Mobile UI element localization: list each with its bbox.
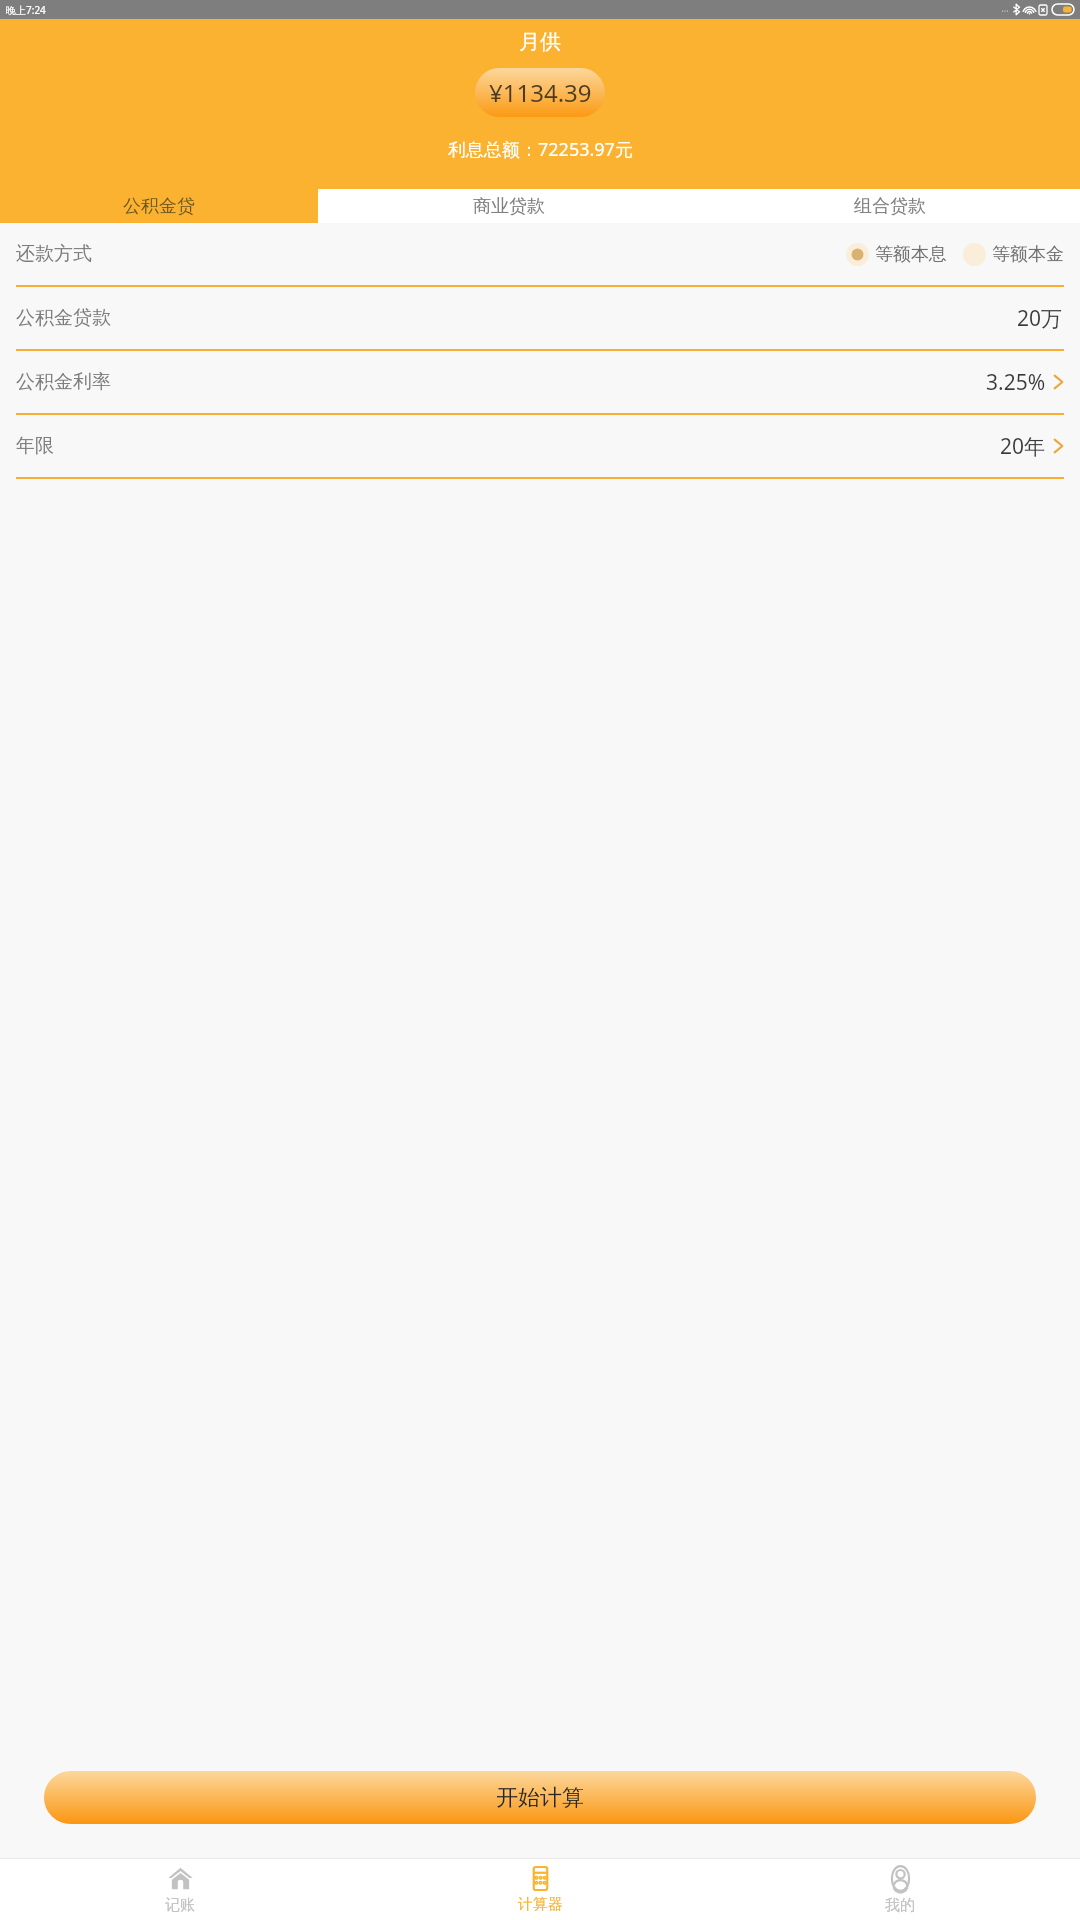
button[interactable]: 公积金贷 [0,189,318,223]
button[interactable]: 计算器 [360,1859,720,1920]
staticText: 月供 [519,29,561,55]
staticText: 开始计算 [496,1784,584,1812]
staticText: 等额本金 [992,243,1064,266]
staticText: 公积金贷 [123,195,195,218]
staticText: 商业贷款 [473,195,545,218]
staticText: 还款方式 [16,242,92,266]
staticText: 等额本息 [875,243,947,266]
button[interactable]: 公积金利率 [16,351,1064,413]
button[interactable]: 年限 [16,415,1064,477]
staticText: 我的 [885,1896,915,1915]
staticText: 公积金贷款 [16,306,111,330]
button[interactable]: 开始计算 [44,1771,1036,1824]
staticText: 3.25% [986,368,1046,397]
staticText: 利息总额：72253.97元 [448,137,633,162]
staticText: ¥1134.39 [489,76,592,109]
button[interactable]: 商业贷款 [318,189,699,223]
staticText: 年限 [16,434,54,458]
button[interactable]: ¥1134.39 [475,68,605,117]
staticText: 计算器 [518,1895,563,1914]
staticText: 晚上7:24 [6,3,46,17]
staticText: 记账 [165,1896,195,1915]
button[interactable]: 公积金贷款 [16,287,1064,349]
staticText: 组合贷款 [854,195,926,218]
button[interactable]: 等额本金 [963,243,1064,266]
staticText: 20年 [1000,432,1046,461]
staticText: 20万 [1017,304,1063,333]
button[interactable]: 记账 [0,1859,360,1920]
staticText: 公积金利率 [16,370,111,394]
button[interactable]: 组合贷款 [699,189,1080,223]
button[interactable]: 我的 [720,1859,1080,1920]
button[interactable]: 等额本息 [846,243,947,266]
